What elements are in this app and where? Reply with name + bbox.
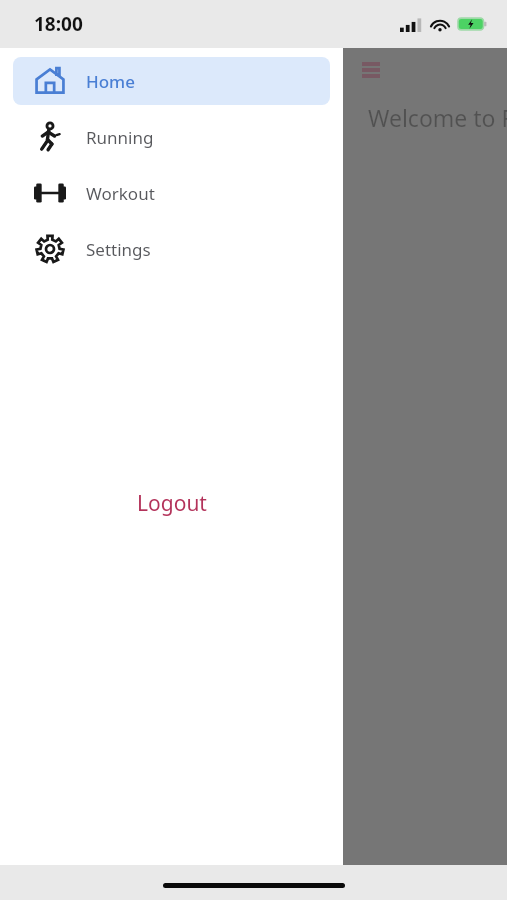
button[interactable]: Workout xyxy=(13,169,330,217)
button[interactable]: Running xyxy=(13,113,330,161)
button[interactable]: Logout xyxy=(0,481,343,525)
staticText: Settings xyxy=(86,238,151,261)
button[interactable]: Open navigation menu xyxy=(356,58,386,82)
staticText: Workout xyxy=(86,182,155,205)
staticText: Logout xyxy=(137,489,207,518)
button[interactable]: Home xyxy=(13,57,330,105)
staticText: Home xyxy=(86,70,135,93)
staticText: Welcome to FitApp xyxy=(368,102,507,133)
staticText: Running xyxy=(86,126,154,149)
button[interactable]: Settings xyxy=(13,225,330,273)
staticText: 18:00 xyxy=(34,11,83,37)
